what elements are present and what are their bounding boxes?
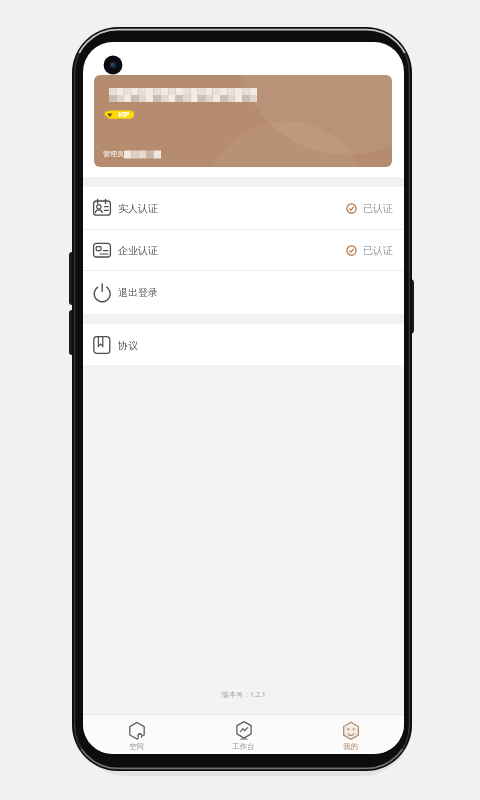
staticText: 工作台 bbox=[232, 742, 255, 751]
staticText: 协议 bbox=[118, 339, 138, 352]
staticText: 版本号：1.2.1 bbox=[222, 690, 266, 700]
button[interactable]: 我的 bbox=[297, 715, 404, 753]
staticText: 企业认证 bbox=[118, 244, 158, 257]
button[interactable]: 退出登录 bbox=[83, 271, 404, 314]
staticText: 空间 bbox=[129, 742, 144, 751]
staticText: 退出登录 bbox=[118, 286, 158, 299]
staticText: 已认证 bbox=[363, 202, 393, 215]
button[interactable]: 空间 bbox=[83, 715, 190, 753]
staticText: 实人认证 bbox=[118, 202, 158, 215]
staticText: 我的 bbox=[343, 742, 358, 751]
button[interactable]: VIP bbox=[94, 75, 392, 167]
button[interactable]: 工作台 bbox=[190, 715, 297, 753]
staticText: VIP bbox=[118, 110, 130, 120]
button[interactable]: 协议 bbox=[83, 324, 404, 366]
staticText: 已认证 bbox=[363, 244, 393, 257]
staticText: 管理员: bbox=[103, 149, 126, 159]
button[interactable]: 实人认证 bbox=[83, 187, 404, 229]
button[interactable]: 企业认证 bbox=[83, 230, 404, 270]
